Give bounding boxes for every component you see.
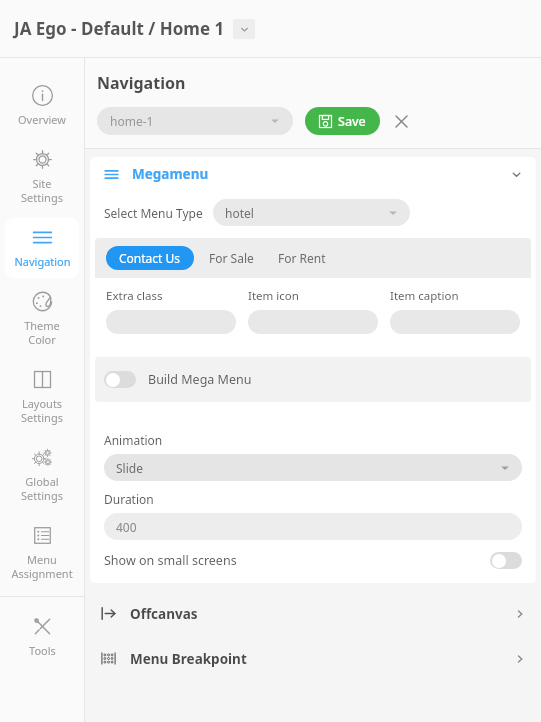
button[interactable]: Slide bbox=[104, 454, 522, 481]
staticText: Overview bbox=[18, 112, 66, 127]
staticText: hotel bbox=[225, 205, 254, 221]
button[interactable]: Expand template selector bbox=[233, 19, 255, 39]
staticText: Layouts Settings bbox=[21, 396, 63, 425]
staticText: Navigation bbox=[97, 72, 186, 94]
button[interactable]: Save bbox=[305, 107, 380, 135]
staticText: Item caption bbox=[390, 288, 459, 304]
button[interactable]: Menu Assignment bbox=[5, 516, 79, 590]
button[interactable]: Menu Breakpoint bbox=[85, 636, 541, 681]
button[interactable]: Toggle off bbox=[490, 552, 522, 569]
staticText: Item icon bbox=[248, 288, 299, 304]
button[interactable]: Tools bbox=[5, 607, 79, 667]
button[interactable]: For Rent bbox=[269, 246, 335, 270]
button[interactable]: Extra class bbox=[106, 310, 236, 334]
button[interactable]: Theme Color bbox=[5, 282, 79, 356]
staticText: Menu Assignment bbox=[11, 552, 73, 581]
button[interactable]: For Sale bbox=[200, 246, 263, 270]
button[interactable]: Global Settings bbox=[5, 438, 79, 512]
staticText: Tools bbox=[29, 643, 56, 658]
button[interactable]: Site Settings bbox=[5, 140, 79, 214]
button[interactable]: Toggle off bbox=[95, 357, 531, 402]
staticText: Menu Breakpoint bbox=[130, 650, 247, 668]
button[interactable]: Item caption bbox=[390, 310, 520, 334]
button[interactable]: hotel bbox=[213, 199, 410, 226]
staticText: Build Mega Menu bbox=[148, 371, 252, 388]
button[interactable]: Close bbox=[389, 109, 413, 133]
button[interactable]: Megamenu bbox=[90, 157, 536, 191]
staticText: Navigation bbox=[14, 254, 71, 269]
button[interactable]: Show on small screens bbox=[104, 552, 522, 569]
staticText: 400 bbox=[116, 519, 137, 535]
staticText: Extra class bbox=[106, 288, 163, 304]
staticText: Site Settings bbox=[21, 176, 63, 205]
staticText: Select Menu Type bbox=[104, 205, 203, 221]
staticText: Offcanvas bbox=[130, 605, 198, 623]
staticText: Megamenu bbox=[132, 165, 209, 183]
staticText: JA Ego - Default / Home 1 bbox=[14, 17, 225, 40]
staticText: Global Settings bbox=[21, 474, 63, 503]
button[interactable]: Layouts Settings bbox=[5, 360, 79, 434]
staticText: For Sale bbox=[209, 250, 254, 266]
button[interactable]: 400 bbox=[104, 513, 522, 540]
staticText: home-1 bbox=[110, 113, 154, 129]
button[interactable]: Navigation bbox=[5, 218, 79, 278]
button[interactable]: Contact Us bbox=[106, 246, 194, 270]
button[interactable]: home-1 bbox=[97, 107, 293, 135]
button[interactable]: Overview bbox=[5, 76, 79, 136]
staticText: For Rent bbox=[278, 250, 326, 266]
staticText: Contact Us bbox=[119, 250, 181, 266]
staticText: Duration bbox=[104, 491, 154, 507]
button[interactable]: Offcanvas bbox=[85, 591, 541, 636]
staticText: Animation bbox=[104, 432, 163, 448]
staticText: Save bbox=[338, 113, 366, 130]
staticText: Slide bbox=[116, 460, 143, 476]
staticText: Show on small screens bbox=[104, 552, 237, 569]
staticText: Theme Color bbox=[24, 318, 60, 347]
button[interactable]: Item icon bbox=[248, 310, 378, 334]
button[interactable]: Toggle off bbox=[104, 371, 136, 388]
